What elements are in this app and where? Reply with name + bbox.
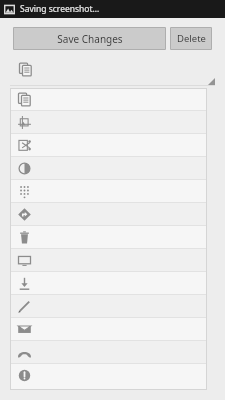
button[interactable]: Download [10, 272, 207, 294]
button[interactable]: Contrast [10, 157, 207, 179]
button[interactable]: Directions [10, 203, 207, 225]
staticText: Saving screenshot… [20, 3, 100, 15]
button[interactable]: Desktop [10, 249, 207, 271]
button[interactable]: Crop image [10, 111, 207, 133]
button[interactable]: Delete [10, 226, 207, 248]
button[interactable]: Copy [10, 88, 207, 110]
button[interactable]: Edit [10, 295, 207, 317]
button[interactable]: Choose icon [10, 56, 215, 86]
staticText: Delete [177, 32, 206, 45]
button[interactable]: Cut [10, 134, 207, 156]
button[interactable]: Delete [170, 27, 212, 50]
button[interactable]: Save Changes [13, 27, 166, 50]
staticText: Save Changes [57, 32, 123, 46]
button[interactable]: End call [10, 341, 207, 363]
button[interactable]: Dialpad [10, 180, 207, 202]
button[interactable]: Error [10, 364, 207, 386]
button[interactable]: Email [10, 318, 207, 340]
